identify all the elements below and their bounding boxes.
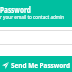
staticText: r your email to contact admin	[0, 13, 64, 20]
other: Send	[2, 62, 9, 69]
button[interactable]: Send	[0, 56, 72, 72]
staticText: Password	[0, 4, 31, 16]
staticText: Send Me Password	[11, 60, 70, 70]
